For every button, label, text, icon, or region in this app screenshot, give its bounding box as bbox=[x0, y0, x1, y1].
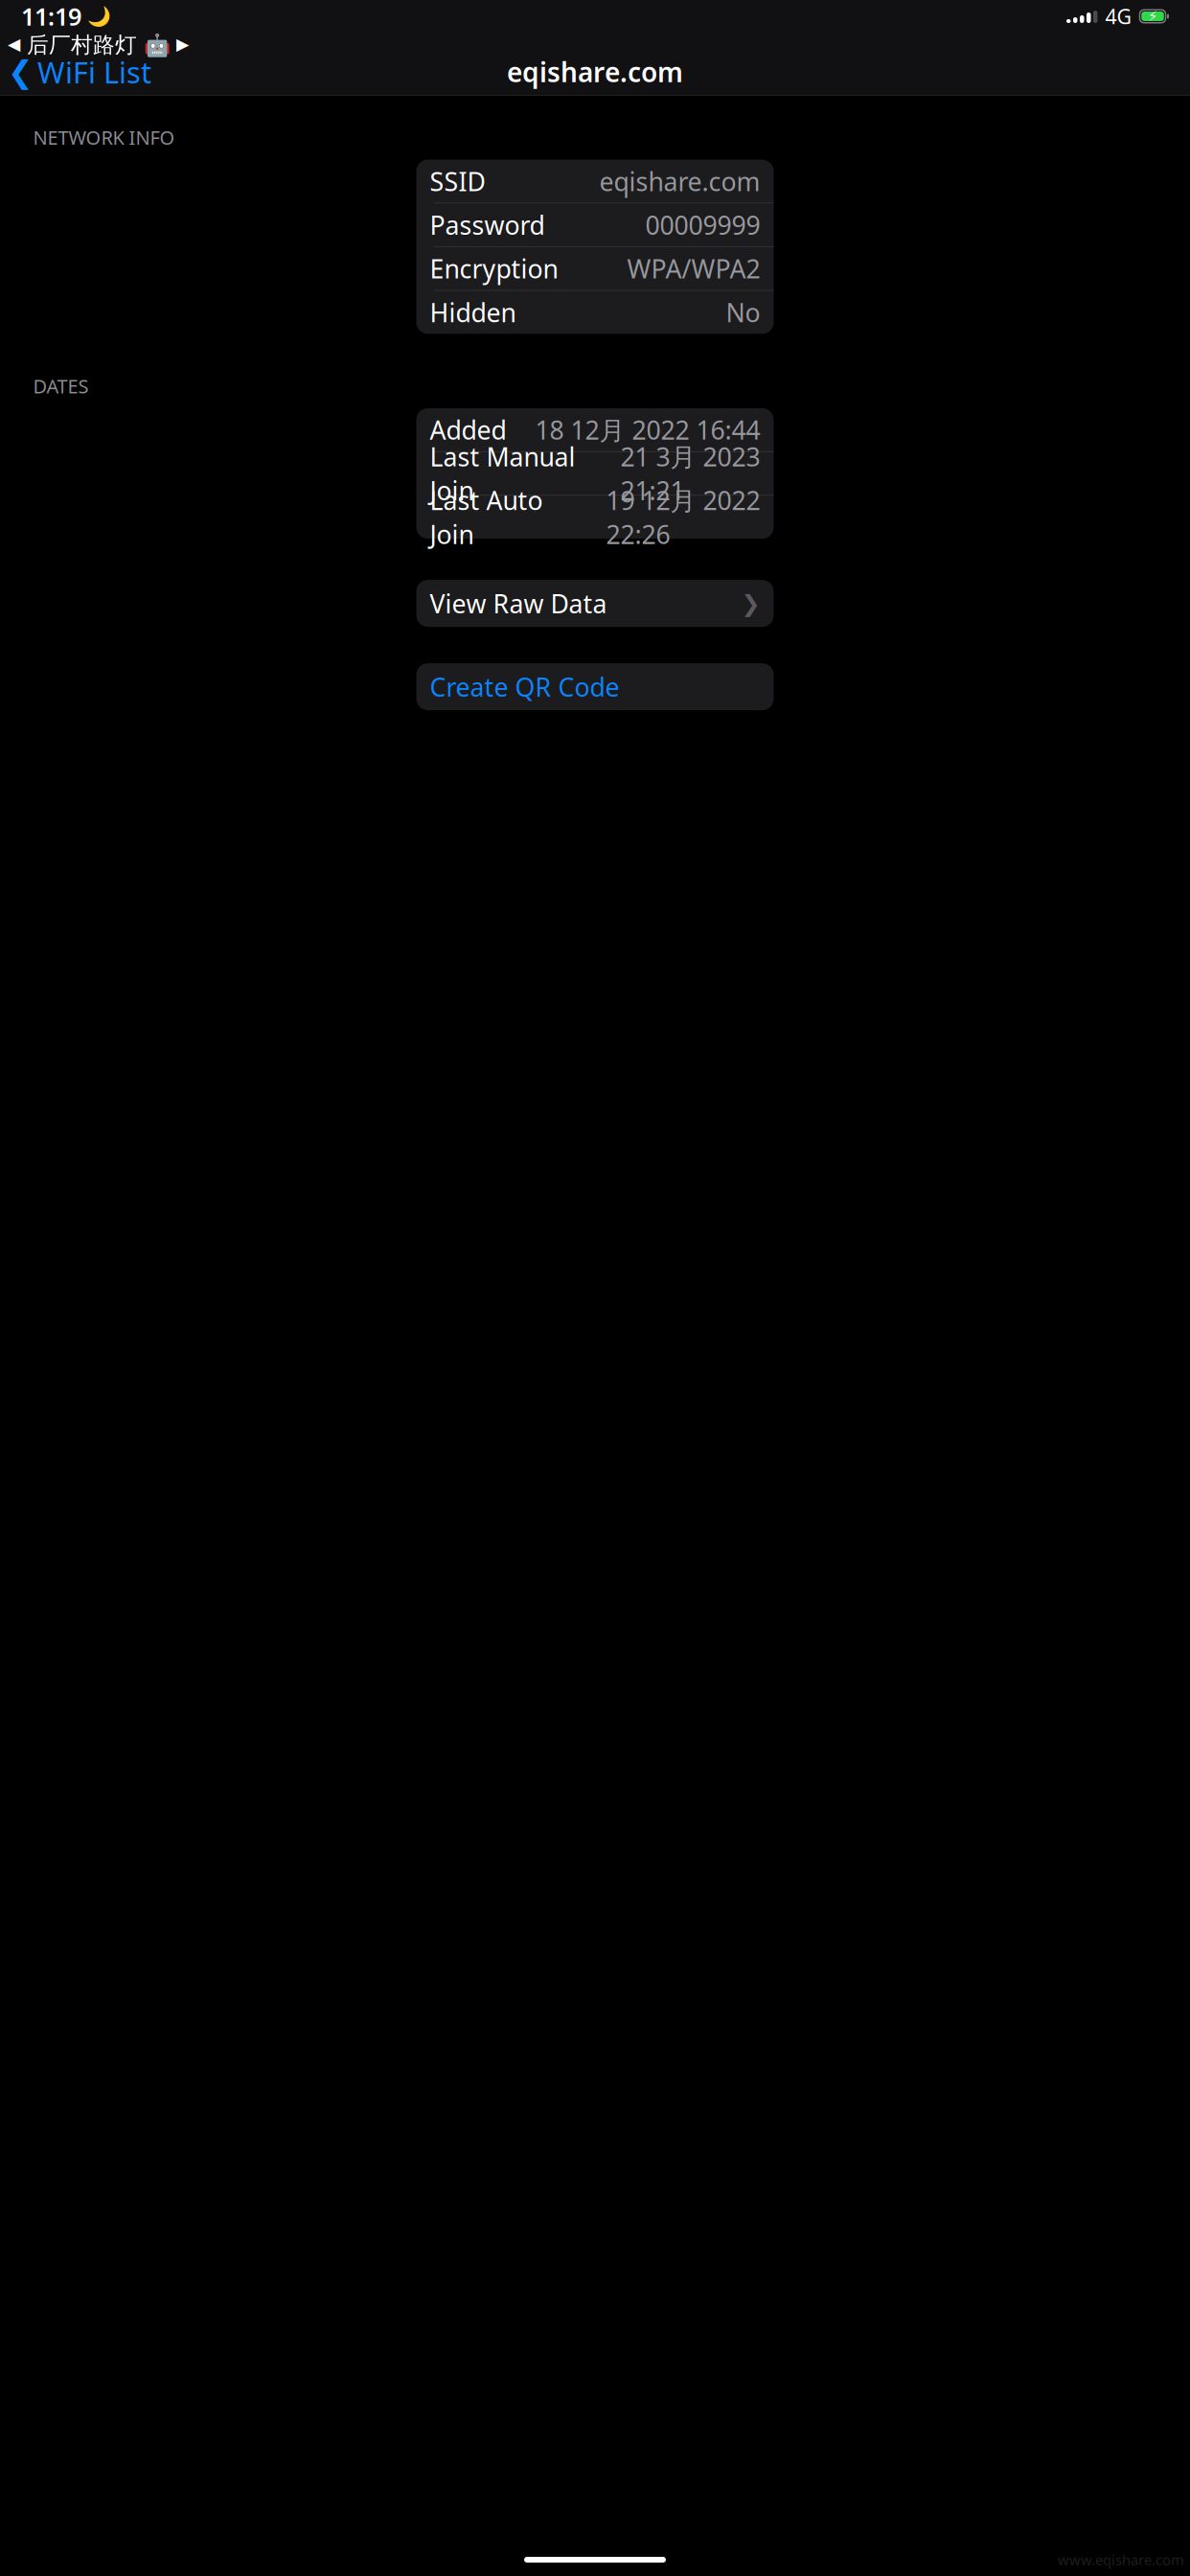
staticText: ▶ bbox=[176, 35, 189, 54]
staticText: 18 12月 2022 16:44 bbox=[535, 413, 760, 447]
staticText: www.eqishare.com bbox=[1058, 2550, 1184, 2569]
staticText: Create QR Code bbox=[430, 670, 619, 704]
staticText: SSID bbox=[430, 164, 485, 198]
staticText: DATES bbox=[33, 373, 89, 399]
button[interactable]: ❮ bbox=[0, 47, 151, 97]
staticText: 21 3月 2023 21:21 bbox=[620, 439, 760, 507]
staticText: ❮ bbox=[8, 54, 34, 89]
staticText: Hidden bbox=[430, 295, 516, 329]
staticText: 11:19 bbox=[21, 0, 81, 32]
staticText: 4G bbox=[1105, 3, 1132, 30]
staticText: ⚡︎ bbox=[1148, 8, 1157, 24]
staticText: eqishare.com bbox=[507, 54, 683, 90]
staticText: NETWORK INFO bbox=[33, 125, 175, 150]
staticText: Added bbox=[430, 413, 506, 447]
button[interactable]: View Raw Data bbox=[416, 580, 774, 627]
staticText: 19 12月 2022 22:26 bbox=[606, 483, 760, 551]
staticText: ❯ bbox=[741, 590, 760, 616]
staticText: No bbox=[726, 295, 760, 329]
staticText: WPA/WPA2 bbox=[627, 252, 760, 286]
staticText: eqishare.com bbox=[599, 164, 760, 198]
button[interactable]: Create QR Code bbox=[416, 663, 774, 710]
staticText: Password bbox=[430, 208, 545, 242]
staticText: 00009999 bbox=[645, 208, 760, 242]
staticText: 🌙 bbox=[87, 5, 111, 27]
staticText: Last Auto Join bbox=[430, 483, 543, 551]
staticText: ◀ bbox=[8, 35, 20, 54]
staticText: Encryption bbox=[430, 252, 558, 286]
staticText: View Raw Data bbox=[430, 586, 607, 620]
staticText: WiFi List bbox=[37, 52, 151, 91]
staticText: 后厂村路灯 🤖 bbox=[20, 30, 176, 58]
staticText: Last Manual Join bbox=[430, 439, 575, 507]
